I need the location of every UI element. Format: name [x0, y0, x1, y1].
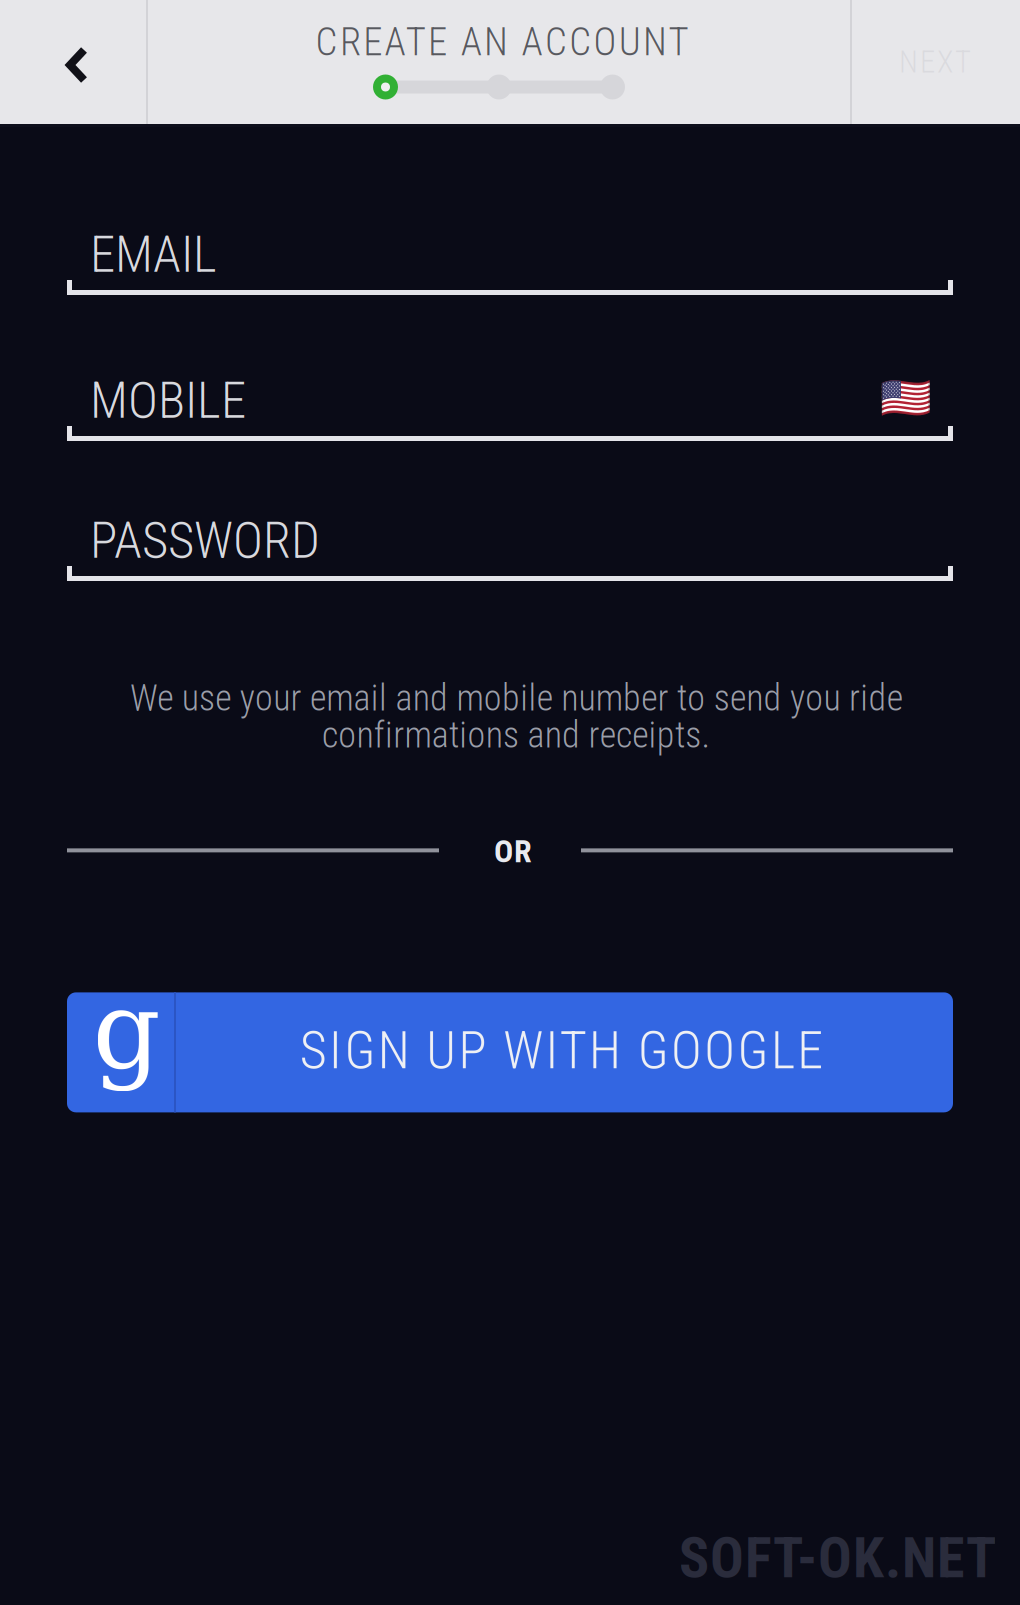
- staticText: SOFT-OK.NET: [679, 1525, 996, 1591]
- button[interactable]: g: [67, 992, 953, 1112]
- staticText: OR: [494, 833, 532, 870]
- staticText: 🇺🇸: [880, 373, 931, 422]
- staticText: EMAIL: [90, 225, 217, 284]
- staticText: NEXT: [899, 44, 971, 80]
- staticText: PASSWORD: [90, 511, 320, 570]
- button[interactable]: Back: [0, 0, 148, 124]
- staticText: CREATE AN ACCOUNT: [316, 19, 688, 65]
- staticText: MOBILE: [90, 371, 246, 430]
- staticText: We use your email and mobile number to s…: [130, 677, 902, 756]
- staticText: g: [92, 968, 160, 1092]
- staticText: SIGN UP WITH GOOGLE: [300, 1020, 823, 1081]
